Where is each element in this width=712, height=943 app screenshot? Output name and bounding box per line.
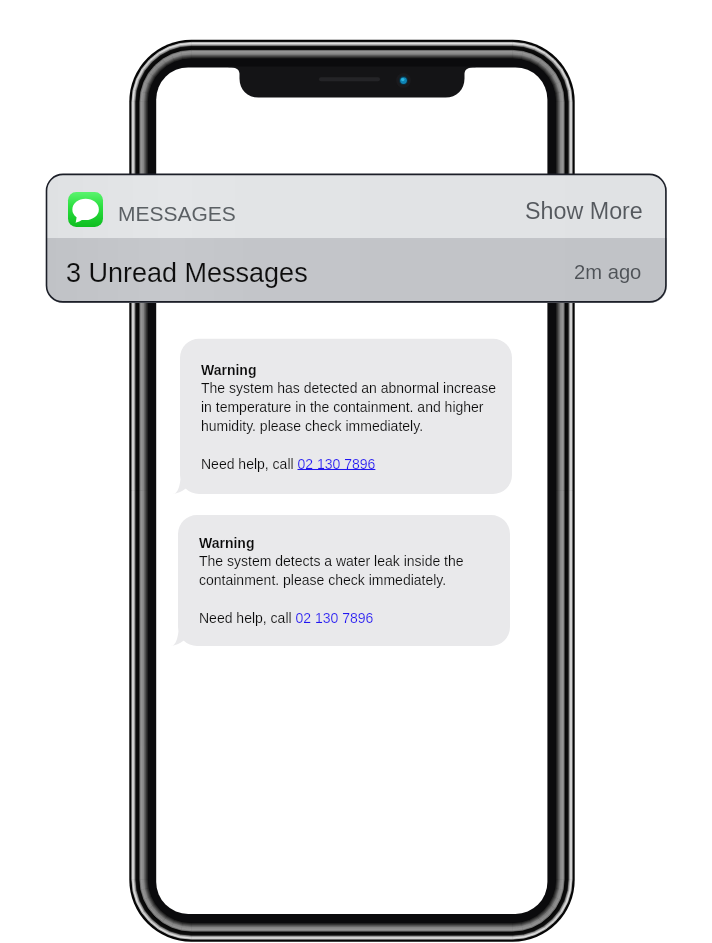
staticText: Warning The system has detected an abnor… [201,362,496,472]
button[interactable]: Messages [46,174,667,303]
button[interactable]: Warning The system detects a water leak … [178,515,510,646]
button[interactable]: Messages [68,192,221,227]
button[interactable]: Warning The system has detected an abnor… [180,339,512,494]
staticText: 3 Unread Messages [66,258,308,288]
staticText: Warning The system detects a water leak … [199,535,464,626]
button[interactable]: Show More [510,188,658,234]
other: Messages [68,192,103,227]
staticText: MESSAGES [118,202,236,225]
staticText: 2m ago [574,261,642,284]
staticText: Show More [525,198,643,224]
